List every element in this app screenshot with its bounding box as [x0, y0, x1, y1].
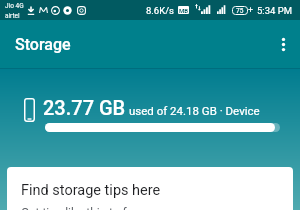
button[interactable]: Find storage tips here: [7, 167, 293, 210]
staticText: 5:34 PM: [257, 5, 292, 16]
button[interactable]: More options: [266, 27, 300, 61]
staticText: 8.6K/s: [146, 5, 174, 16]
staticText: airtel: [5, 12, 20, 20]
staticText: used of 24.18 GB · Device: [129, 104, 260, 117]
staticText: Storage: [15, 35, 71, 54]
staticText: 75: [236, 7, 244, 15]
staticText: +: [248, 5, 254, 16]
staticText: Get tips like this to free up space: [21, 206, 195, 210]
staticText: MB: [179, 7, 189, 14]
staticText: Find storage tips here: [21, 182, 161, 199]
staticText: 23.77 GB: [43, 96, 126, 119]
staticText: Jio 4G: [5, 2, 24, 10]
